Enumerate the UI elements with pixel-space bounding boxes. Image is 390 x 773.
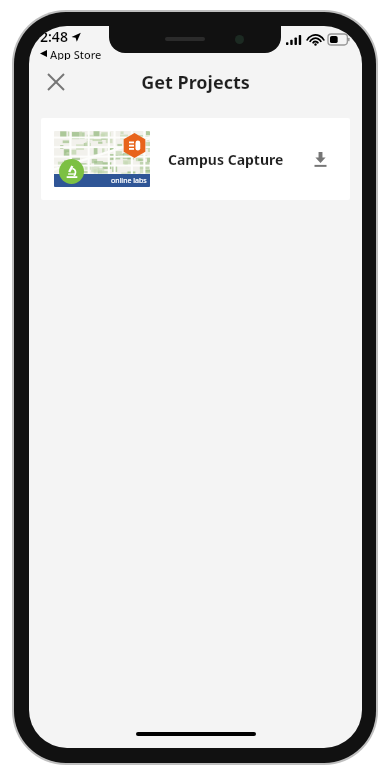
button[interactable]: Download [303, 142, 337, 176]
staticText: Get Projects [141, 70, 250, 95]
staticText: App Store [50, 47, 102, 60]
staticText: 2:48 [40, 27, 68, 46]
button[interactable]: online labs [41, 118, 350, 200]
button[interactable]: Close [35, 61, 77, 103]
staticText: Campus Capture [168, 150, 303, 169]
staticText: online labs [111, 176, 147, 186]
